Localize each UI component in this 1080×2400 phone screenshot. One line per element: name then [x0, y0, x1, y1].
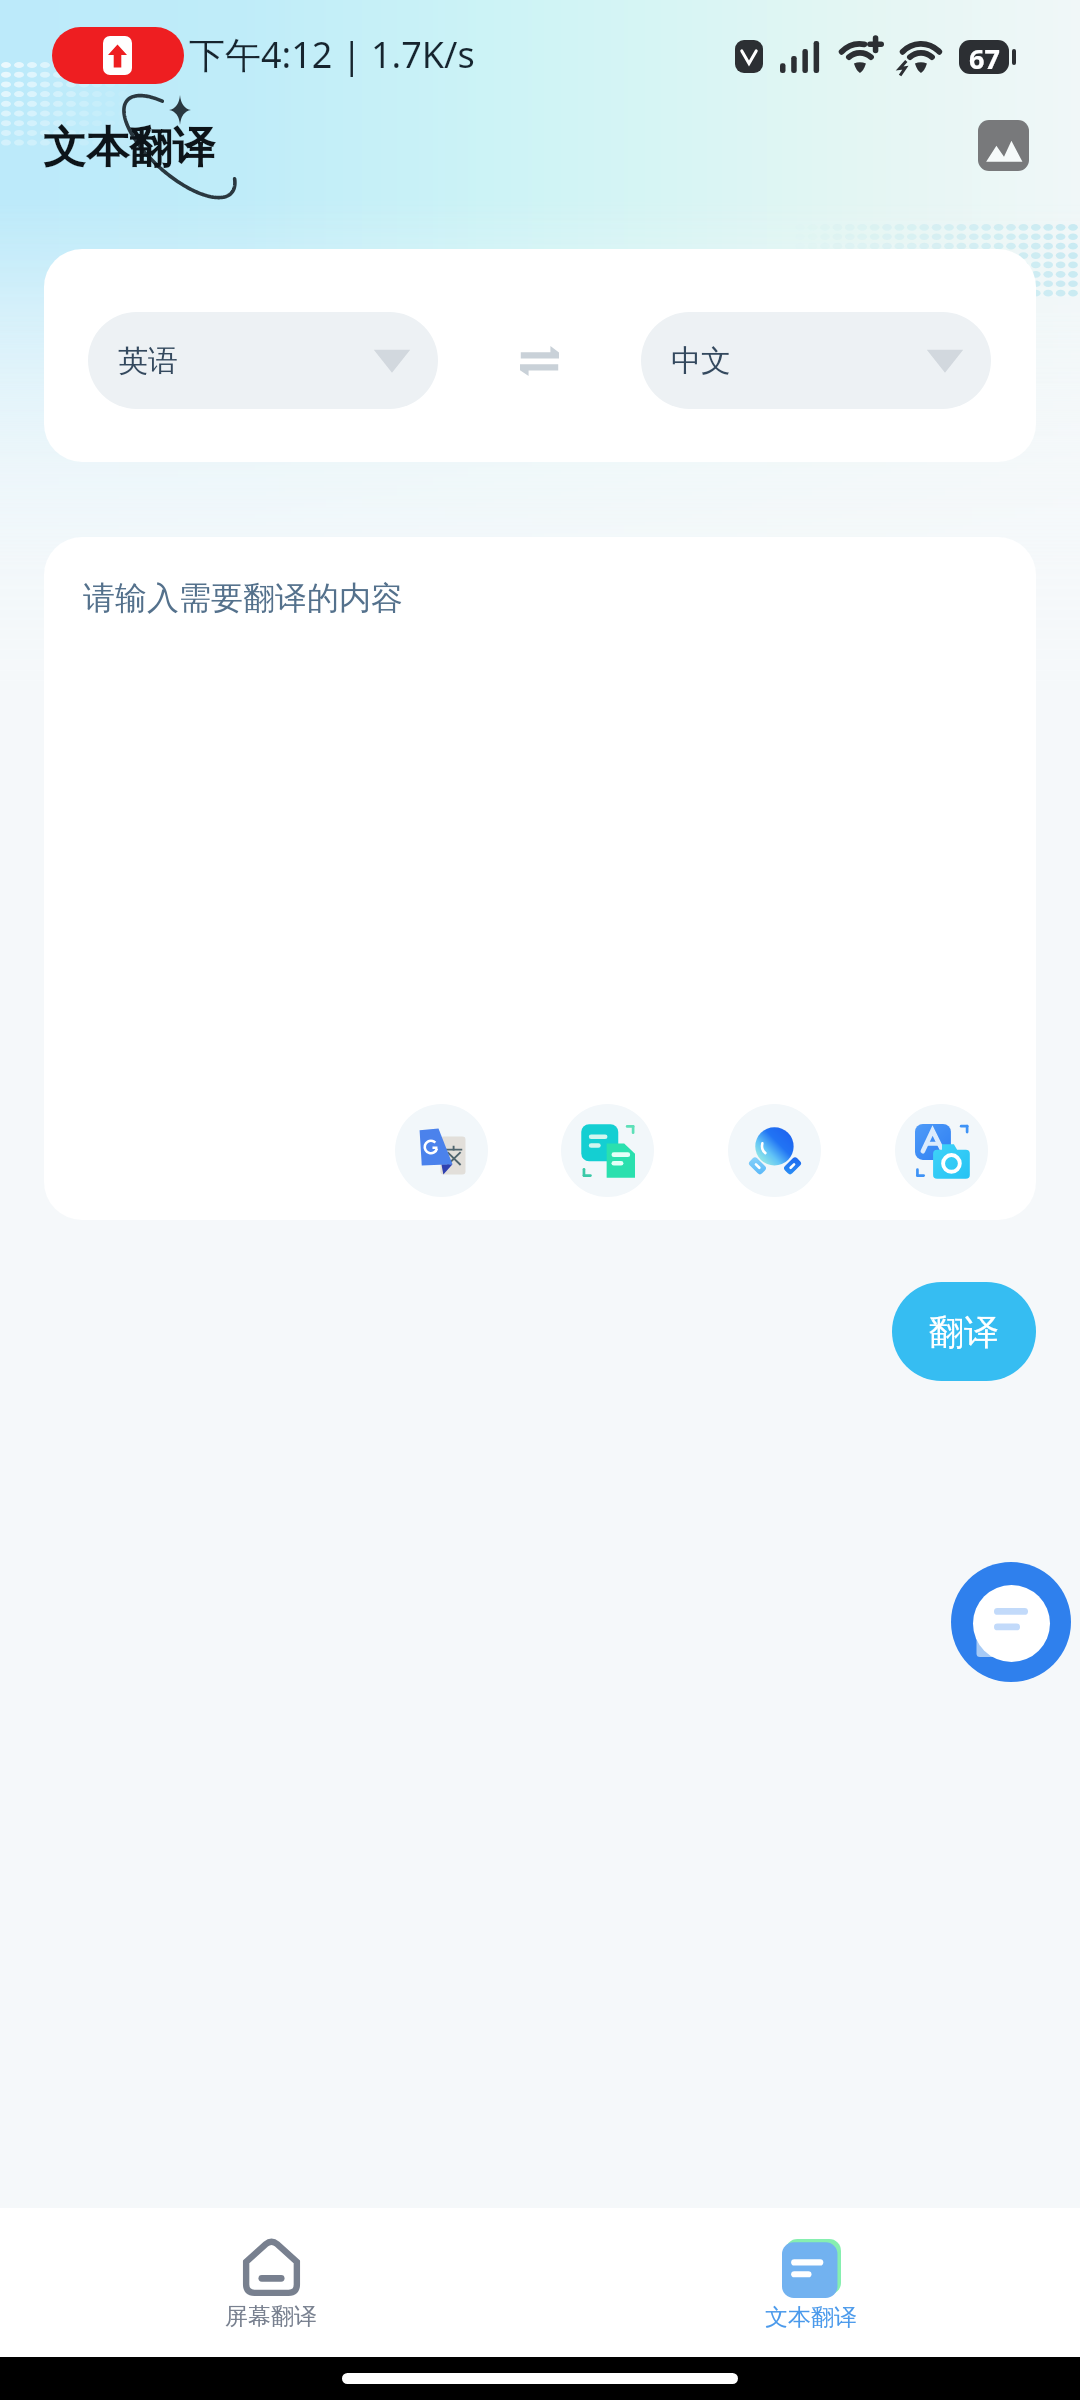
staticText: 屏幕翻译: [225, 2302, 317, 2331]
button[interactable]: 文本翻译: [540, 2208, 1080, 2357]
button[interactable]: Image: [978, 120, 1029, 171]
button[interactable]: Camera translate: [895, 1104, 988, 1197]
staticText: 文本翻译: [765, 2303, 857, 2332]
button[interactable]: Chat: [951, 1562, 1071, 1682]
button[interactable]: Google translate: [395, 1104, 488, 1197]
button[interactable]: Word lookup: [728, 1104, 821, 1197]
button[interactable]: 翻译: [892, 1282, 1036, 1381]
button[interactable]: Document translate: [561, 1104, 654, 1197]
staticText: 请输入需要翻译的内容: [83, 578, 403, 618]
staticText: 中文: [671, 342, 731, 380]
button[interactable]: 屏幕翻译: [0, 2208, 540, 2357]
button[interactable]: 中文: [641, 312, 991, 409]
staticText: 67: [969, 40, 1000, 74]
staticText: 翻译: [929, 1310, 999, 1354]
staticText: 文本翻译: [43, 121, 215, 175]
button[interactable]: Swap languages: [438, 312, 641, 409]
button[interactable]: 请输入需要翻译的内容: [44, 537, 1036, 1220]
button[interactable]: 英语: [88, 312, 438, 409]
staticText: 下午4:12 | 1.7K/s: [189, 30, 475, 79]
staticText: 英语: [118, 342, 178, 380]
